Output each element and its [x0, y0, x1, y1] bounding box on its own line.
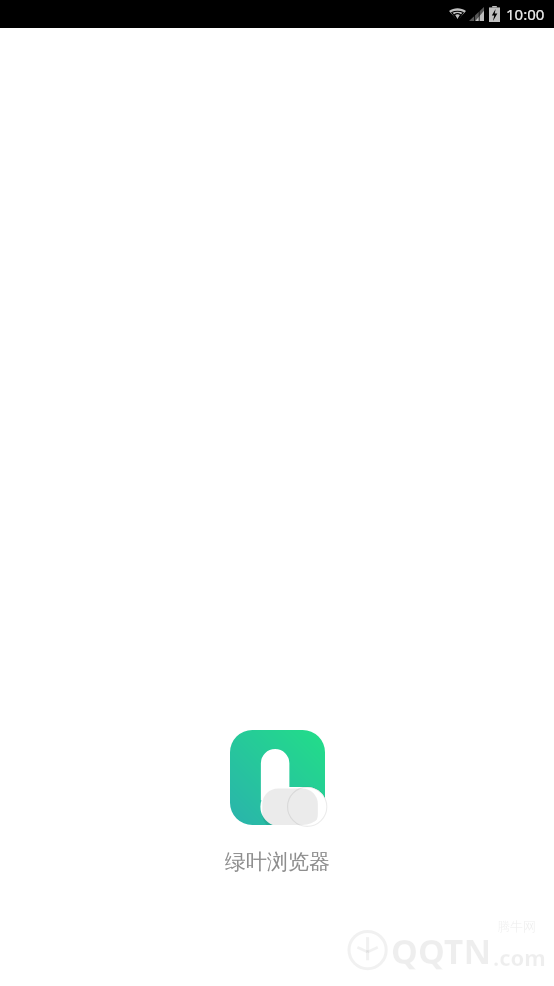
- staticText: QQTN: [391, 928, 492, 974]
- staticText: 腾牛网: [497, 918, 536, 934]
- staticText: 绿叶浏览器: [225, 849, 330, 875]
- staticText: .com: [493, 942, 546, 972]
- button[interactable]: 绿叶浏览器 应用图标: [230, 730, 325, 825]
- staticText: 10:00: [506, 4, 545, 24]
